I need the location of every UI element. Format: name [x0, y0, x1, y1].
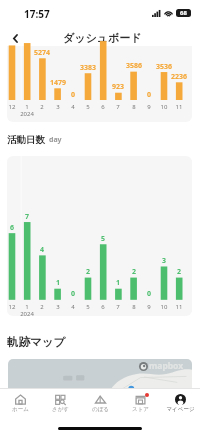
staticText: 6: [96, 103, 110, 111]
staticText: 2024: [17, 310, 37, 318]
button[interactable]: ホーム: [0, 389, 40, 417]
staticText: ダッシュボード: [63, 31, 142, 45]
staticText: 軌跡マップ: [7, 335, 66, 349]
staticText: 5: [91, 234, 115, 244]
staticText: 2: [122, 267, 146, 277]
staticText: 3: [51, 103, 65, 111]
staticText: 2: [35, 103, 49, 111]
staticText: 8: [127, 103, 141, 111]
staticText: 5274: [30, 48, 54, 58]
staticText: 2236: [167, 72, 191, 82]
staticText: 6: [0, 223, 24, 233]
staticText: 3586: [122, 61, 146, 71]
staticText: 2: [167, 267, 191, 277]
button[interactable]: ストア: [120, 389, 160, 417]
staticText: 7: [111, 103, 125, 111]
staticText: 9: [142, 303, 156, 311]
staticText: マイページ: [166, 406, 195, 413]
button[interactable]: Back: [3, 28, 27, 48]
staticText: 9: [142, 103, 156, 111]
button[interactable]: Map: [8, 359, 192, 389]
staticText: 1479: [46, 78, 70, 88]
staticText: mapbox: [149, 360, 184, 372]
button[interactable]: のぼる: [80, 389, 120, 417]
staticText: 2024: [17, 110, 37, 118]
staticText: 7: [15, 212, 39, 222]
staticText: 923: [106, 82, 130, 92]
staticText: 1: [20, 103, 34, 111]
staticText: 3383: [76, 63, 100, 73]
staticText: 68: [180, 9, 187, 17]
staticText: 5: [81, 103, 95, 111]
staticText: 7: [111, 303, 125, 311]
staticText: 12: [5, 103, 19, 111]
staticText: 4: [30, 245, 54, 255]
staticText: 0: [137, 90, 161, 100]
staticText: 活動日数: [7, 134, 45, 146]
staticText: ストア: [132, 406, 149, 413]
staticText: 12: [5, 303, 19, 311]
staticText: 0: [61, 289, 85, 299]
staticText: 0: [61, 90, 85, 100]
staticText: 3536: [152, 62, 176, 72]
button[interactable]: マイページ: [160, 389, 200, 417]
staticText: day: [49, 135, 62, 145]
staticText: 3: [51, 303, 65, 311]
staticText: 2: [35, 303, 49, 311]
staticText: さがす: [52, 406, 69, 413]
staticText: 1: [20, 303, 34, 311]
staticText: 5: [81, 303, 95, 311]
staticText: 2: [76, 267, 100, 277]
staticText: 10: [157, 303, 171, 311]
staticText: 8: [127, 303, 141, 311]
staticText: 11: [172, 103, 186, 111]
staticText: 4: [66, 303, 80, 311]
staticText: のぼる: [92, 406, 109, 413]
staticText: 1: [46, 278, 70, 288]
staticText: ホーム: [12, 406, 29, 413]
staticText: 4: [66, 103, 80, 111]
staticText: 6: [96, 303, 110, 311]
staticText: 10: [157, 103, 171, 111]
staticText: 1: [106, 278, 130, 288]
staticText: 17:57: [24, 7, 50, 21]
staticText: 11: [172, 303, 186, 311]
staticText: 3: [152, 256, 176, 266]
staticText: 0: [137, 289, 161, 299]
button[interactable]: さがす: [40, 389, 80, 417]
